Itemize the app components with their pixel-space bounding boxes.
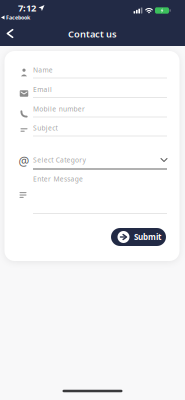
button[interactable]: Mobile number	[33, 100, 167, 118]
staticText: 7:12	[18, 2, 36, 14]
staticText: Name	[33, 66, 53, 74]
staticText: Select Category	[33, 156, 85, 164]
staticText: Enter Message	[33, 175, 83, 183]
button[interactable]: Subject	[33, 119, 167, 137]
button[interactable]: Back	[2, 25, 18, 41]
staticText: Submit	[134, 232, 161, 242]
staticText: @	[18, 153, 29, 169]
staticText: Facebook	[6, 14, 30, 21]
staticText: Contact us	[68, 28, 117, 40]
button[interactable]: Name	[33, 61, 167, 79]
button[interactable]: Select Category	[33, 152, 167, 172]
staticText: Email	[33, 85, 52, 94]
staticText: Mobile number	[33, 105, 85, 113]
button[interactable]: Enter Message	[33, 175, 167, 217]
button[interactable]: Submit	[111, 228, 166, 246]
staticText: Subject	[33, 124, 57, 132]
button[interactable]: Email	[33, 80, 167, 98]
